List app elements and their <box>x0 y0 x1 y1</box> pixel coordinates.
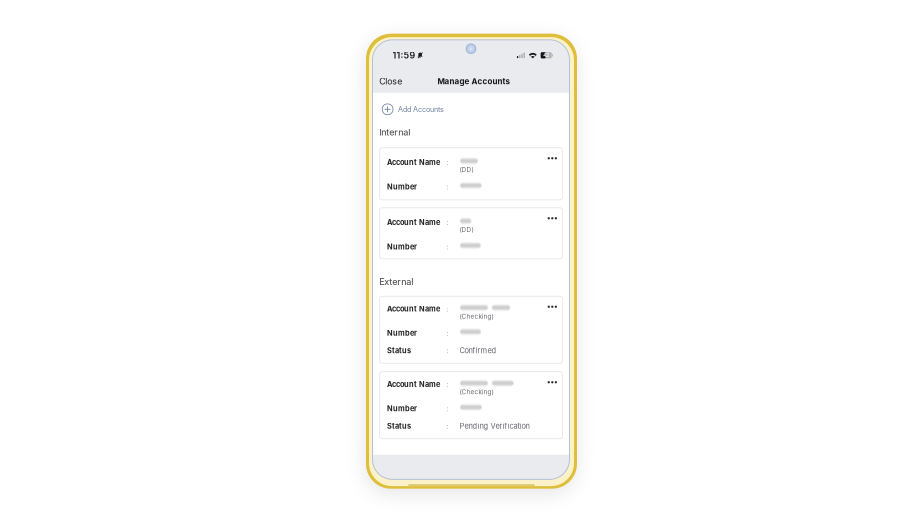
staticText: : <box>446 380 448 389</box>
staticText: : <box>446 346 448 355</box>
staticText: 11:59 <box>393 50 416 61</box>
staticText: (Checking) <box>459 313 493 320</box>
staticText: Account Name <box>387 218 440 227</box>
staticText: Close <box>379 76 402 87</box>
staticText: Account Name <box>387 380 440 389</box>
staticText: Number <box>387 404 417 413</box>
staticText: : <box>446 242 448 251</box>
staticText: Manage Accounts <box>437 76 509 86</box>
staticText: Internal <box>379 127 410 138</box>
staticText: (DD) <box>459 166 473 174</box>
staticText: Status <box>387 422 411 430</box>
staticText: (DD) <box>459 226 473 234</box>
staticText: (Checking) <box>459 388 493 396</box>
staticText: Number <box>387 182 417 191</box>
staticText: : <box>446 182 448 191</box>
button[interactable]: More options <box>544 153 560 164</box>
staticText: Confirmed <box>459 346 496 355</box>
staticText: External <box>379 276 413 287</box>
staticText: : <box>446 218 448 227</box>
staticText: : <box>446 329 448 337</box>
staticText: : <box>446 422 448 430</box>
staticText: Account Name <box>387 158 440 167</box>
button[interactable]: Close <box>373 70 408 92</box>
button[interactable]: Add Accounts <box>373 100 569 119</box>
staticText: Number <box>387 329 417 337</box>
staticText: : <box>446 304 448 313</box>
staticText: Account Name <box>387 304 440 313</box>
button[interactable]: More options <box>544 377 560 388</box>
staticText: Pending Verification <box>459 421 529 430</box>
staticText: Status <box>387 346 411 355</box>
staticText: : <box>446 158 448 167</box>
button[interactable]: More options <box>544 213 560 224</box>
button[interactable]: More options <box>544 301 560 312</box>
staticText: Number <box>387 242 417 251</box>
staticText: : <box>446 404 448 413</box>
staticText: Add Accounts <box>398 105 444 114</box>
staticText: 42 <box>543 52 549 58</box>
